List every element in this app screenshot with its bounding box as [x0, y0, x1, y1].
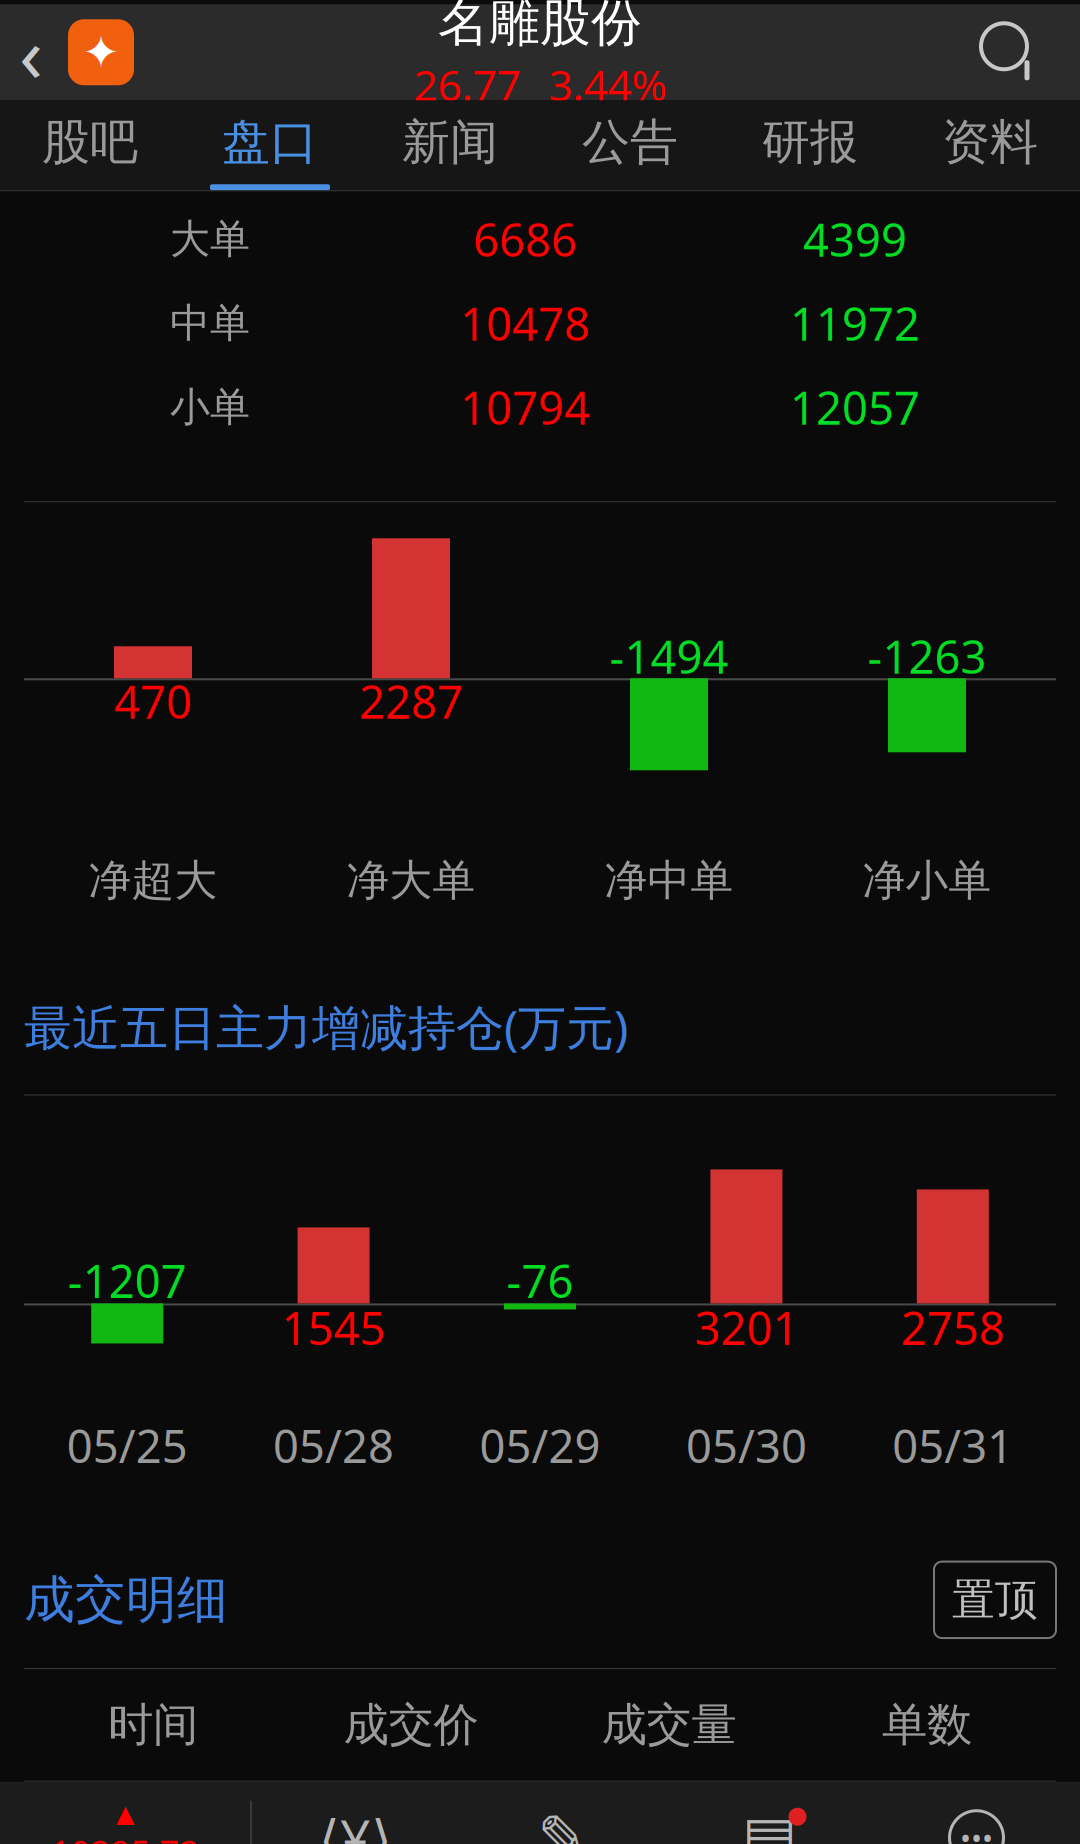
staticText: 10478	[460, 293, 590, 353]
staticText: ▤	[742, 1804, 797, 1844]
staticText: ✦	[82, 27, 120, 78]
staticText: 最近五日主力增减持仓(万元)	[24, 995, 628, 1058]
staticText: 10295.72	[50, 1829, 199, 1844]
staticText: -1263	[867, 626, 986, 686]
staticText: 11972	[790, 293, 920, 353]
staticText: 4399	[803, 209, 907, 269]
button[interactable]: Widgets	[666, 1782, 873, 1844]
staticText: 05/29	[479, 1415, 600, 1476]
staticText: 05/30	[686, 1415, 807, 1476]
staticText: •••	[960, 1818, 993, 1844]
staticText: ⟨¥⟩	[319, 1802, 392, 1844]
staticText: 股吧	[42, 113, 138, 172]
button[interactable]: ▲	[0, 1782, 250, 1844]
button[interactable]: More	[873, 1782, 1080, 1844]
button[interactable]: 新闻	[360, 100, 540, 190]
button[interactable]: 股吧	[0, 100, 180, 190]
staticText: 3.44%	[548, 56, 666, 113]
staticText: 12057	[790, 377, 920, 437]
staticText: 单数	[882, 1697, 972, 1753]
staticText: 资料	[942, 113, 1038, 172]
staticText: 公告	[582, 113, 678, 172]
button[interactable]: Search	[940, 4, 1080, 100]
staticText: 新闻	[402, 113, 498, 172]
button[interactable]: 研报	[720, 100, 900, 190]
button[interactable]: 盘口	[180, 100, 360, 190]
staticText: 净中单	[604, 854, 733, 907]
button[interactable]: Trade	[252, 1782, 459, 1844]
staticText: 中单	[170, 299, 250, 348]
button[interactable]: 东方财富 Home	[62, 4, 140, 100]
button[interactable]: Write post	[459, 1782, 666, 1844]
button[interactable]: 置顶	[934, 1562, 1056, 1638]
staticText: 15:56	[22, 0, 129, 6]
staticText: 1545	[282, 1297, 386, 1357]
staticText: 置顶	[952, 1574, 1038, 1626]
staticText: 小单	[170, 383, 250, 432]
staticText: 6686	[473, 209, 577, 269]
staticText: 净大单	[346, 854, 475, 907]
staticText: 大单	[170, 215, 250, 264]
staticText: 成交量	[601, 1697, 736, 1753]
staticText: 成交明细	[24, 1569, 228, 1631]
staticText: 净超大	[88, 854, 217, 907]
staticText: 2287	[359, 671, 463, 731]
staticText: 研报	[762, 113, 858, 172]
staticText: 成交价	[343, 1697, 478, 1753]
staticText: 05/25	[67, 1415, 188, 1476]
staticText: 10794	[460, 377, 590, 437]
staticText: 470	[114, 671, 192, 731]
staticText: 3201	[694, 1297, 798, 1357]
staticText: ‹	[19, 1, 43, 104]
staticText: 净小单	[862, 854, 991, 907]
staticText: 2758	[901, 1297, 1005, 1357]
staticText: 时间	[108, 1697, 198, 1753]
staticText: -1494	[609, 626, 728, 686]
staticText: 名雕股份	[438, 0, 642, 54]
staticText: 05/31	[892, 1415, 1013, 1476]
staticText: -1207	[68, 1250, 187, 1310]
button[interactable]: 资料	[900, 100, 1080, 190]
button[interactable]: 公告	[540, 100, 720, 190]
staticText: -76	[506, 1250, 573, 1310]
staticText: 盘口	[222, 113, 318, 172]
button[interactable]: Back	[0, 4, 62, 100]
staticText: 05/28	[273, 1415, 394, 1476]
staticText: 26.77	[413, 56, 520, 113]
staticText: ▲	[116, 1800, 134, 1827]
staticText: ✎	[537, 1803, 588, 1844]
